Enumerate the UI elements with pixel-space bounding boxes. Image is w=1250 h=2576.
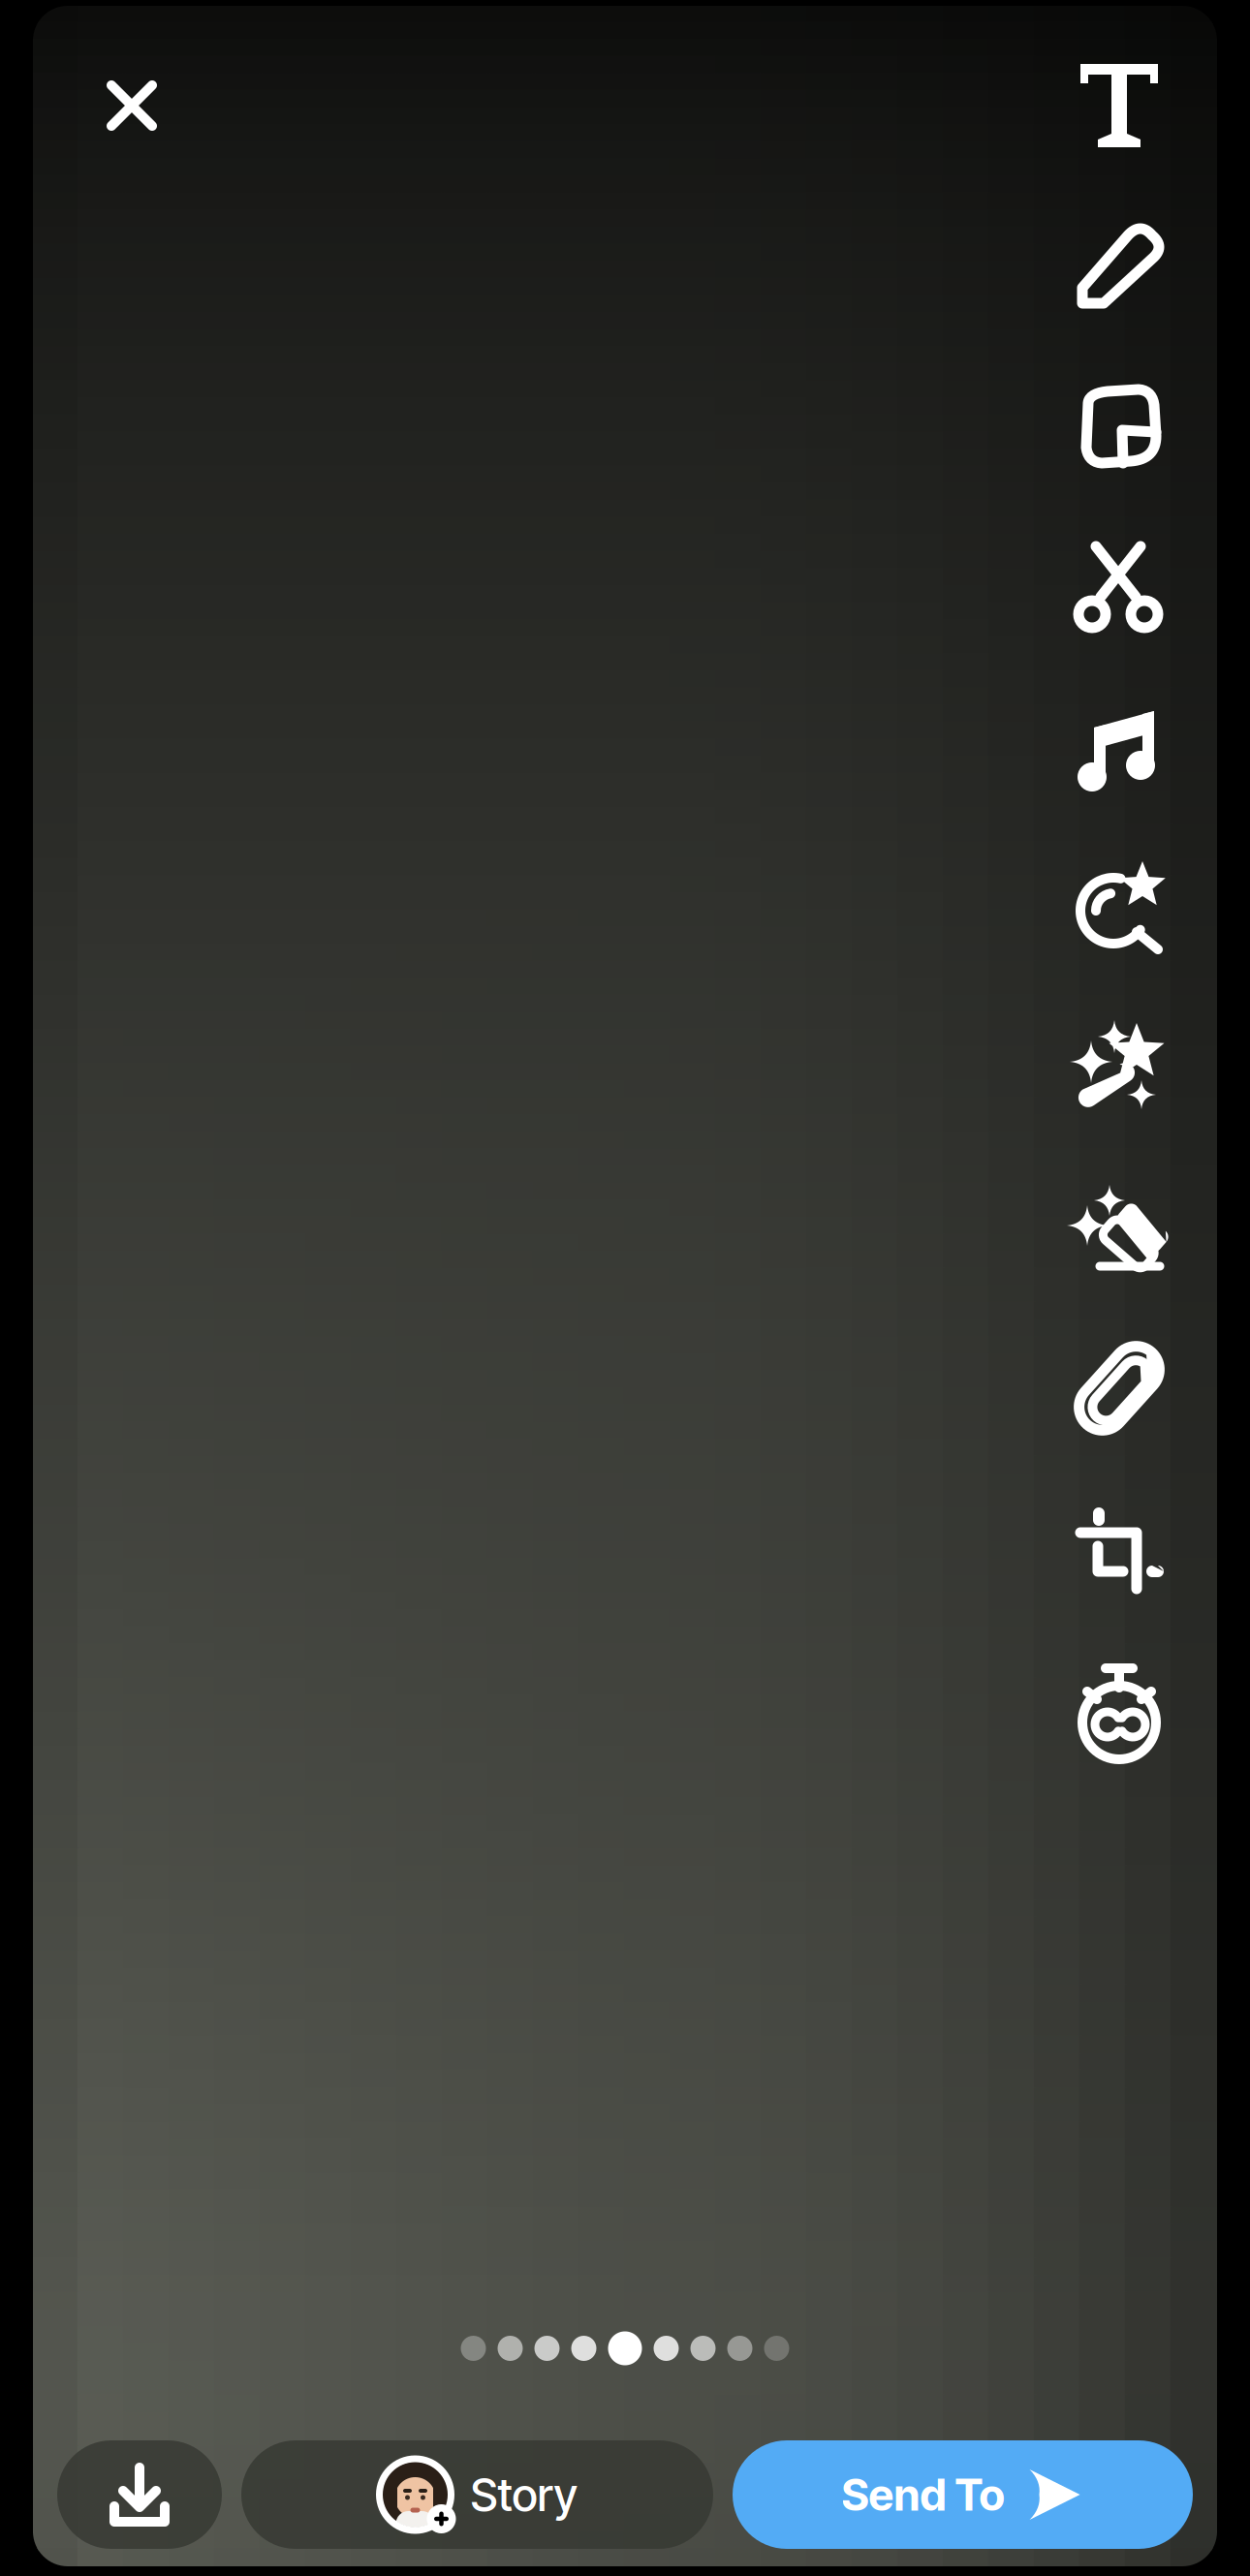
button[interactable]: Close — [78, 52, 185, 159]
button[interactable]: Story — [241, 2440, 713, 2549]
staticText: Story — [470, 2467, 577, 2522]
button[interactable]: Draw — [1061, 208, 1177, 325]
button[interactable]: Lenses — [1061, 849, 1177, 965]
button[interactable]: Music — [1061, 689, 1177, 805]
button[interactable]: Effects — [1061, 1009, 1177, 1126]
button[interactable]: Stickers — [1061, 368, 1177, 484]
button[interactable]: Crop — [1061, 1490, 1177, 1606]
staticText: Send To — [842, 2468, 1004, 2521]
button[interactable]: Cutout — [1061, 529, 1177, 645]
button[interactable]: Text — [1061, 47, 1177, 164]
button[interactable]: Save — [57, 2440, 222, 2549]
button[interactable]: Send To — [733, 2440, 1193, 2549]
button[interactable]: Timer — [1061, 1651, 1177, 1767]
button[interactable]: Attach link — [1061, 1330, 1177, 1446]
button[interactable]: Magic eraser — [1061, 1169, 1177, 1286]
